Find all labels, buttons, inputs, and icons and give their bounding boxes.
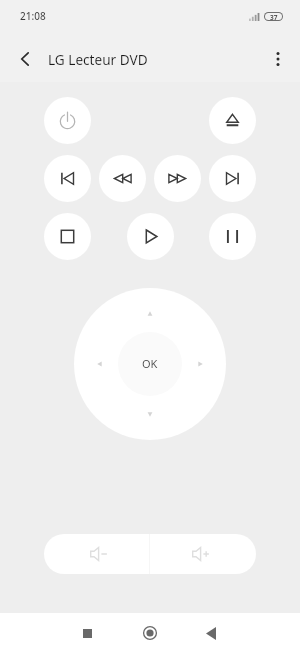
staticText: LG Lecteur DVD [48,50,148,69]
button[interactable]: More options [256,37,300,81]
button[interactable]: Power [44,97,91,144]
button[interactable]: Recents [74,620,100,646]
button[interactable]: Back [3,37,47,81]
button[interactable]: Back [198,620,224,646]
button[interactable]: Volume up [150,534,256,574]
staticText: 37 [270,13,278,20]
button[interactable]: Previous [44,155,91,202]
staticText: OK [142,356,158,371]
button[interactable]: Stop [44,213,91,260]
button[interactable]: Next [209,155,256,202]
button[interactable]: Home [137,620,163,646]
button[interactable]: Rewind [99,155,146,202]
button[interactable]: Pause [209,213,256,260]
button[interactable]: Eject [209,97,256,144]
button[interactable]: OK [118,332,182,396]
button[interactable]: Play [127,213,174,260]
staticText: 21:08 [20,9,46,23]
button[interactable]: Volume down [44,534,149,574]
button[interactable]: Fast forward [154,155,201,202]
